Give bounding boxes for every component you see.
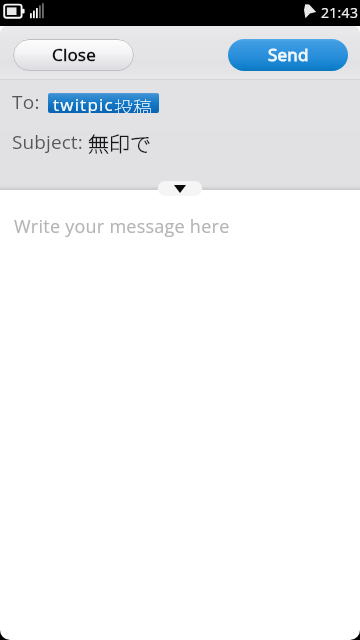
staticText: twitpic xyxy=(53,93,114,113)
staticText: 投稿 xyxy=(114,93,153,113)
button[interactable]: Write your message here xyxy=(14,214,230,239)
button[interactable]: Close xyxy=(13,39,134,71)
button[interactable]: twitpic xyxy=(53,93,153,113)
button[interactable]: Send xyxy=(228,39,348,71)
staticText: 21:43 xyxy=(321,3,359,22)
staticText: To: xyxy=(12,89,40,115)
staticText: Subject: xyxy=(12,129,83,155)
staticText: Send xyxy=(268,43,309,66)
staticText: Close xyxy=(52,43,96,66)
staticText: 無印で xyxy=(88,128,151,158)
button[interactable]: Expand header xyxy=(158,181,202,196)
